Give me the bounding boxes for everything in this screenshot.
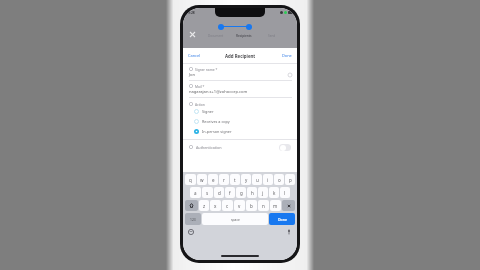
button[interactable]: In-person signer: [183, 126, 297, 136]
button[interactable]: v: [234, 200, 245, 211]
button[interactable]: Emoji: [188, 229, 194, 235]
staticText: s: [206, 190, 209, 196]
button[interactable]: Done: [277, 50, 297, 61]
button[interactable]: Done: [269, 213, 295, 225]
button[interactable]: Mail *: [183, 81, 297, 98]
staticText: q: [189, 177, 192, 183]
staticText: Authentication: [196, 145, 222, 150]
button[interactable]: g: [236, 187, 246, 198]
staticText: Add Recipient: [225, 53, 256, 59]
button[interactable]: j: [258, 187, 268, 198]
staticText: f: [229, 190, 231, 196]
button[interactable]: w: [197, 174, 207, 185]
button[interactable]: e: [208, 174, 218, 185]
staticText: a: [194, 190, 197, 196]
button[interactable]: y: [241, 174, 251, 185]
button[interactable]: Cancel: [183, 50, 206, 61]
staticText: z: [203, 203, 206, 209]
button[interactable]: d: [214, 187, 224, 198]
staticText: 123: [190, 217, 196, 221]
staticText: space: [231, 217, 240, 221]
button[interactable]: Shift: [185, 200, 198, 211]
staticText: y: [245, 177, 248, 183]
staticText: Mail *: [195, 84, 205, 88]
staticText: h: [251, 190, 254, 196]
button[interactable]: Receives a copy: [183, 116, 297, 126]
button[interactable]: Close: [189, 31, 196, 38]
staticText: Jon: [189, 72, 196, 78]
staticText: c: [226, 203, 229, 209]
staticText: t: [234, 177, 236, 183]
button[interactable]: p: [285, 174, 295, 185]
button[interactable]: space: [202, 213, 268, 225]
button[interactable]: z: [199, 200, 209, 211]
button[interactable]: Signer name *: [183, 64, 297, 81]
other: Clear: [288, 73, 292, 77]
staticText: w: [200, 177, 204, 183]
button[interactable]: c: [222, 200, 233, 211]
button[interactable]: i: [263, 174, 273, 185]
staticText: nagarajan.s+1@zohocorp.com: [189, 89, 248, 95]
button[interactable]: b: [246, 200, 257, 211]
staticText: b: [250, 203, 253, 209]
staticText: n: [262, 203, 265, 209]
staticText: Send: [268, 34, 276, 38]
staticText: g: [240, 190, 243, 196]
staticText: p: [289, 177, 292, 183]
staticText: Recipients: [236, 34, 252, 38]
staticText: In-person signer: [202, 129, 232, 134]
button[interactable]: h: [247, 187, 257, 198]
button[interactable]: l: [280, 187, 290, 198]
button[interactable]: Signer: [183, 106, 297, 116]
staticText: v: [238, 203, 241, 209]
staticText: Receives a copy: [202, 119, 230, 124]
staticText: Signer name *: [195, 67, 218, 71]
button[interactable]: 123: [185, 213, 201, 225]
button[interactable]: f: [225, 187, 235, 198]
staticText: l: [284, 190, 286, 196]
button[interactable]: r: [219, 174, 229, 185]
button[interactable]: Backspace: [282, 200, 295, 211]
button[interactable]: o: [274, 174, 284, 185]
button[interactable]: Dictate: [286, 229, 292, 235]
staticText: k: [273, 190, 276, 196]
staticText: Action: [195, 102, 205, 106]
button[interactable]: t: [230, 174, 240, 185]
staticText: r: [223, 177, 225, 183]
button[interactable]: s: [202, 187, 213, 198]
staticText: Done: [278, 217, 287, 222]
staticText: Cancel: [188, 53, 201, 58]
staticText: i: [267, 177, 269, 183]
button[interactable]: q: [185, 174, 196, 185]
staticText: m: [273, 203, 278, 209]
staticText: Done: [282, 53, 292, 58]
button[interactable]: a: [190, 187, 201, 198]
staticText: x: [214, 203, 217, 209]
button[interactable]: m: [270, 200, 281, 211]
button[interactable]: u: [252, 174, 262, 185]
staticText: e: [212, 177, 215, 183]
button[interactable]: Authentication: [183, 140, 297, 154]
staticText: Document: [208, 34, 224, 38]
button[interactable]: n: [258, 200, 269, 211]
staticText: d: [218, 190, 221, 196]
staticText: 9:28: [188, 10, 195, 15]
button[interactable]: x: [210, 200, 221, 211]
staticText: Signer: [202, 109, 214, 114]
staticText: u: [256, 177, 259, 183]
staticText: j: [262, 190, 264, 196]
staticText: o: [278, 177, 281, 183]
button[interactable]: k: [269, 187, 279, 198]
